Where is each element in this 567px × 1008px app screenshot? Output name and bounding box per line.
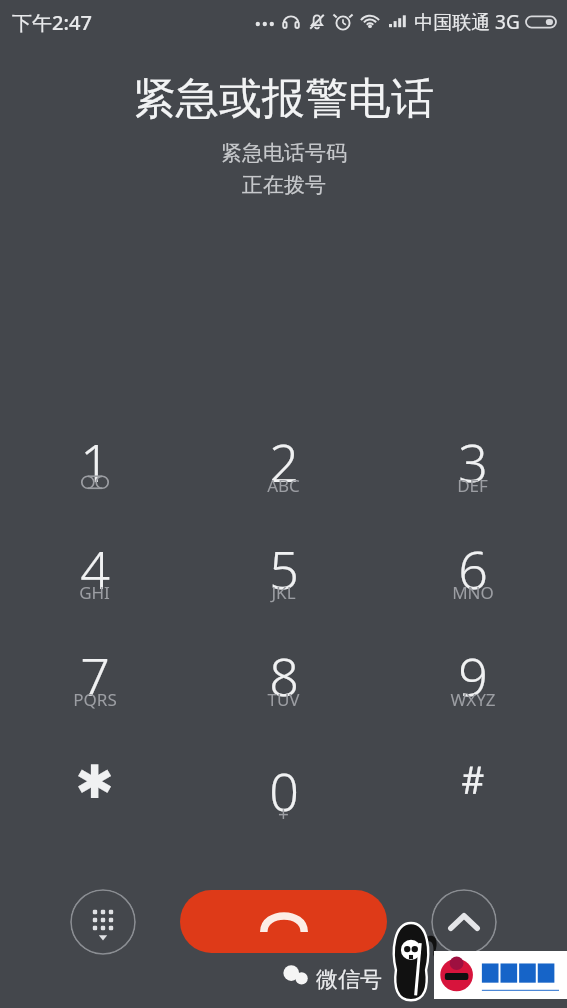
button[interactable]: 1 <box>0 412 189 519</box>
button[interactable]: 0 <box>189 733 378 840</box>
staticText: ABC <box>267 474 300 497</box>
staticText: PQRS <box>73 688 117 711</box>
button[interactable]: 4 <box>0 519 189 626</box>
staticText: 下午2:47 <box>12 9 92 36</box>
staticText: 5 <box>269 533 299 604</box>
staticText: TUV <box>267 688 300 711</box>
button[interactable]: Show keypad <box>70 889 136 955</box>
staticText: 正在拨号 <box>242 172 326 198</box>
staticText: + <box>278 801 289 827</box>
staticText: ＃ <box>453 755 493 805</box>
button[interactable]: ＃ <box>378 733 567 840</box>
staticText: 8 <box>269 640 299 711</box>
button[interactable]: End call <box>180 890 387 953</box>
staticText: 紧急或报警电话 <box>133 72 434 126</box>
staticText: 1 <box>80 426 110 497</box>
button[interactable]: 8 <box>189 626 378 733</box>
button[interactable]: 2 <box>189 412 378 519</box>
button[interactable]: 9 <box>378 626 567 733</box>
staticText: 微信号 <box>316 966 382 994</box>
button[interactable]: 7 <box>0 626 189 733</box>
staticText: MNO <box>452 581 494 604</box>
button[interactable]: 3 <box>378 412 567 519</box>
staticText: 紧急电话号码 <box>221 140 347 166</box>
button[interactable]: 5 <box>189 519 378 626</box>
staticText: 7 <box>80 640 110 711</box>
staticText: 4 <box>80 533 110 604</box>
staticText: 3 <box>458 426 488 497</box>
staticText: 6 <box>458 533 488 604</box>
staticText: GHI <box>79 581 110 604</box>
staticText: 0 <box>269 755 299 826</box>
staticText: ✱ <box>75 755 114 809</box>
staticText: 中国联通 3G <box>414 9 520 35</box>
staticText: 9 <box>458 640 488 711</box>
staticText: WXYZ <box>450 688 496 711</box>
button[interactable]: 6 <box>378 519 567 626</box>
button[interactable]: ✱ <box>0 733 189 840</box>
staticText: JKL <box>271 581 296 604</box>
button[interactable]: More options <box>431 889 497 955</box>
staticText: DEF <box>457 474 488 497</box>
staticText: 2 <box>269 426 299 497</box>
